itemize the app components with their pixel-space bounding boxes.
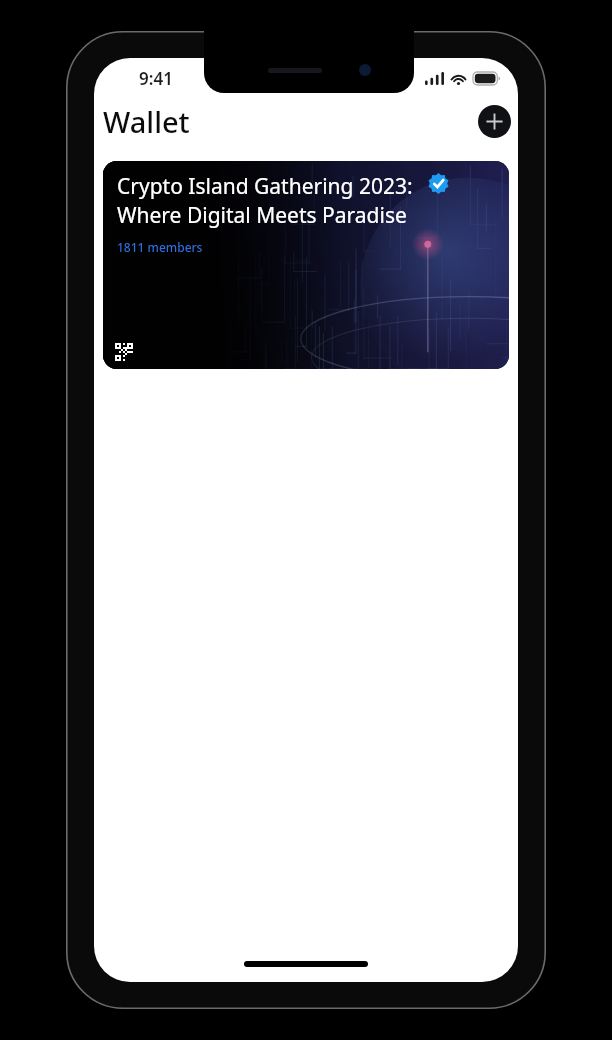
staticText: Where Digital Meets Paradise	[117, 201, 407, 230]
other: QR code	[115, 343, 133, 361]
staticText: 9:41	[139, 67, 173, 90]
staticText: Wallet	[103, 102, 190, 141]
staticText: 1811 members	[117, 239, 203, 255]
staticText: Crypto Island Gathering 2023:	[117, 172, 413, 201]
button[interactable]: Crypto Island Gathering 2023:	[103, 161, 509, 369]
button[interactable]: Add	[478, 105, 511, 138]
